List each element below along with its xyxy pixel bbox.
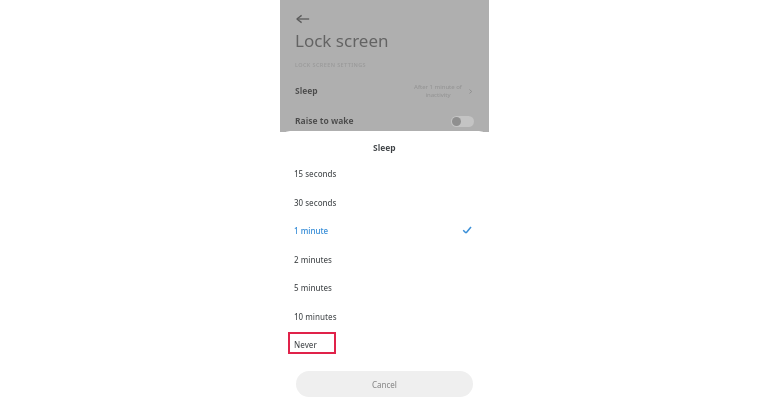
button[interactable]: 2 minutes: [280, 248, 489, 270]
staticText: Cancel: [372, 379, 397, 390]
button[interactable]: 1 minute: [280, 219, 489, 241]
button[interactable]: Cancel: [296, 371, 473, 397]
button[interactable]: Never: [280, 333, 489, 355]
staticText: 1 minute: [294, 225, 329, 236]
button[interactable]: Sleep: [280, 76, 489, 106]
staticText: 2 minutes: [294, 254, 332, 265]
button[interactable]: Raise to wake toggle: [451, 116, 474, 127]
button[interactable]: Raise to wake: [280, 110, 489, 132]
staticText: 5 minutes: [294, 282, 332, 293]
button[interactable]: 30 seconds: [280, 191, 489, 213]
button[interactable]: Back: [288, 4, 318, 34]
staticText: Lock screen: [295, 29, 389, 52]
staticText: Sleep: [295, 85, 318, 97]
button[interactable]: 5 minutes: [280, 276, 489, 298]
staticText: LOCK SCREEN SETTINGS: [295, 61, 366, 68]
staticText: 10 minutes: [294, 311, 337, 322]
staticText: After 1 minute of inactivity: [414, 83, 462, 99]
button[interactable]: 15 seconds: [280, 162, 489, 184]
staticText: 30 seconds: [294, 197, 337, 208]
staticText: 15 seconds: [294, 168, 337, 179]
staticText: Sleep: [373, 142, 396, 154]
staticText: Raise to wake: [295, 115, 354, 127]
staticText: Never: [294, 339, 317, 350]
button[interactable]: 10 minutes: [280, 305, 489, 327]
